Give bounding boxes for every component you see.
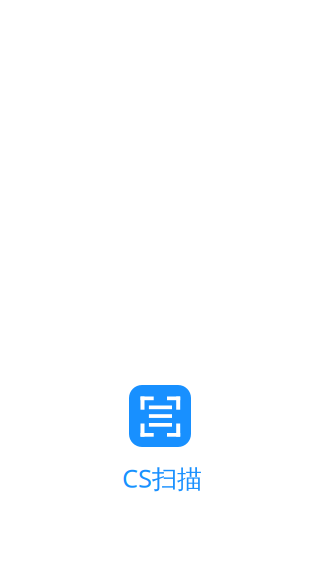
- staticText: CS扫描: [122, 461, 202, 495]
